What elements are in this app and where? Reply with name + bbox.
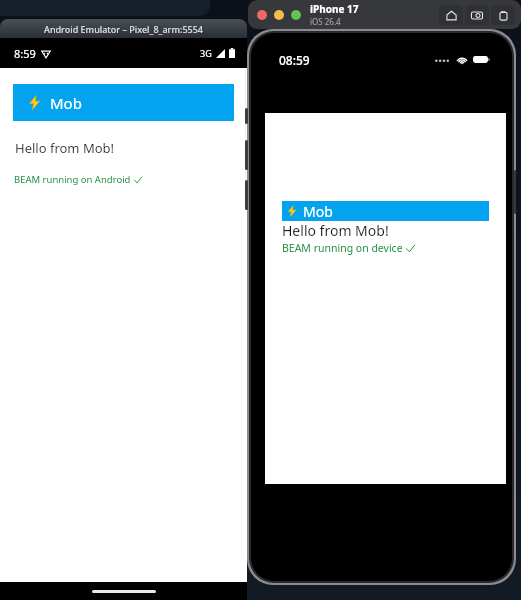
staticText: BEAM running on Android [14,173,131,186]
staticText: iPhone 17 [310,2,359,16]
staticText: iOS 26.4 [310,16,341,27]
button[interactable]: Maximize [291,10,301,20]
button[interactable]: Close [257,10,267,20]
staticText: 3G [200,47,212,59]
staticText: Mob [50,93,82,113]
button[interactable]: Home [439,5,463,25]
staticText: Mob [303,202,333,221]
staticText: Hello from Mob! [282,221,389,240]
button[interactable]: Rotate [491,5,515,25]
staticText: 8:59 [14,46,36,61]
button[interactable]: Mob [13,84,234,121]
staticText: Hello from Mob! [15,139,115,157]
button[interactable]: Screenshot [465,5,489,25]
button[interactable]: Minimize [274,10,284,20]
staticText: BEAM running on device [282,241,403,255]
staticText: Android Emulator – Pixel_8_arm:5554 [44,23,203,35]
staticText: 08:59 [279,52,310,68]
button[interactable]: Mob [282,201,489,221]
